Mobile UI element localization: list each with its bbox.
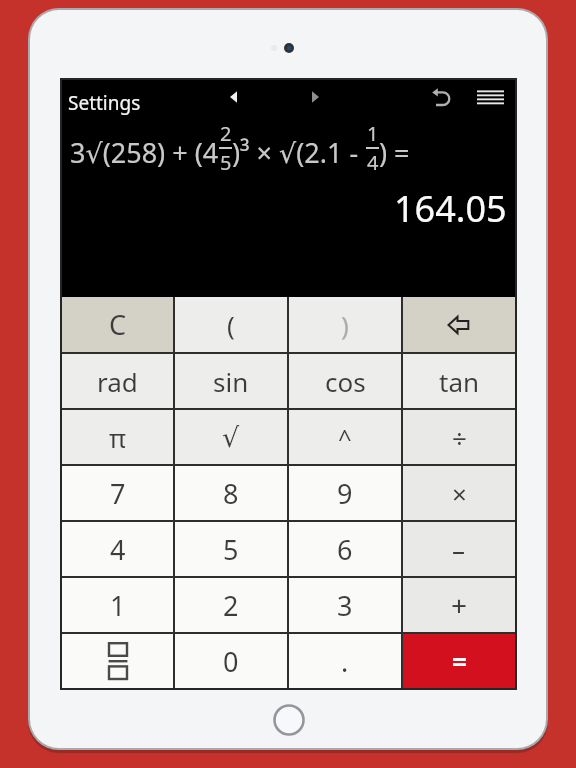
staticText: tan	[439, 364, 480, 399]
button[interactable]: π	[62, 410, 173, 464]
staticText: √	[222, 422, 240, 453]
button[interactable]: 5	[175, 522, 287, 576]
staticText: 0	[223, 643, 239, 680]
button[interactable]: 2	[175, 578, 287, 632]
staticText: π	[109, 420, 126, 455]
staticText: 2	[223, 587, 239, 624]
button[interactable]: 9	[289, 466, 401, 520]
staticText: 9	[337, 475, 353, 512]
button[interactable]: cos	[289, 354, 401, 408]
staticText: –	[452, 532, 466, 567]
button[interactable]: 4	[62, 522, 173, 576]
staticText: 7	[110, 475, 126, 512]
staticText: 1	[110, 587, 126, 624]
staticText: cos	[325, 364, 366, 399]
button[interactable]: 7	[62, 466, 173, 520]
button[interactable]: ×	[403, 466, 515, 520]
staticText: 4	[110, 531, 126, 568]
button[interactable]: ^	[289, 410, 401, 464]
button[interactable]: rad	[62, 354, 173, 408]
staticText: )³ × √(2.1 -	[232, 134, 366, 171]
staticText: ÷	[452, 420, 467, 455]
staticText: ×	[452, 476, 467, 511]
button[interactable]: 1	[62, 578, 173, 632]
button[interactable]: –	[403, 522, 515, 576]
staticText: C	[109, 306, 127, 343]
button[interactable]: +	[403, 578, 515, 632]
button[interactable]: 0	[175, 634, 287, 688]
staticText: =	[452, 644, 467, 679]
button[interactable]	[62, 634, 173, 688]
button[interactable]: .	[289, 634, 401, 688]
staticText: 8	[223, 475, 239, 512]
button[interactable]: tan	[403, 354, 515, 408]
button[interactable]: 3	[289, 578, 401, 632]
button[interactable]	[273, 704, 305, 736]
staticText: 5	[220, 149, 232, 176]
staticText: 3	[337, 587, 353, 624]
staticText: 2	[220, 120, 232, 147]
staticText: ^	[338, 421, 352, 454]
button[interactable]: C	[62, 297, 173, 352]
staticText: 1	[367, 120, 379, 147]
button[interactable]: ÷	[403, 410, 515, 464]
button[interactable]	[403, 297, 515, 352]
staticText: 164.05	[394, 184, 507, 233]
staticText: sin	[213, 364, 249, 399]
staticText: .	[341, 643, 349, 680]
staticText: +	[451, 586, 468, 624]
staticText: ) =	[379, 134, 410, 171]
button[interactable]: √	[175, 410, 287, 464]
staticText: 5	[223, 531, 239, 568]
staticText: rad	[97, 364, 138, 399]
button[interactable]: )	[289, 297, 401, 352]
staticText: )	[341, 307, 349, 342]
button[interactable]: 8	[175, 466, 287, 520]
button[interactable]: 6	[289, 522, 401, 576]
staticText: 3√(258) + (4	[70, 134, 219, 171]
staticText: Settings	[68, 90, 141, 116]
button[interactable]: =	[403, 634, 515, 688]
staticText: 6	[337, 531, 353, 568]
button[interactable]: Settings	[68, 90, 141, 116]
staticText: (	[227, 307, 235, 342]
button[interactable]: sin	[175, 354, 287, 408]
staticText: 4	[367, 149, 379, 176]
button[interactable]: (	[175, 297, 287, 352]
